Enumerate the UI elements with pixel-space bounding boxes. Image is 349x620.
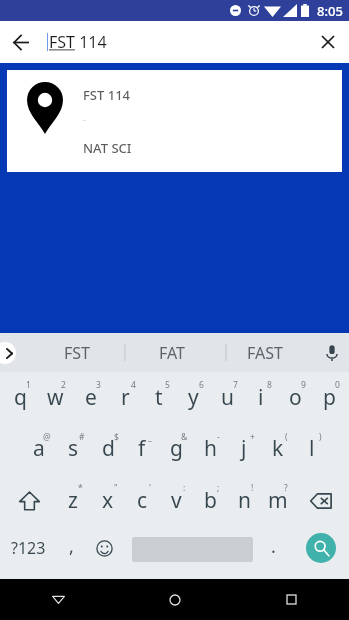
- staticText: a: [33, 434, 45, 463]
- staticText: q: [14, 383, 27, 412]
- staticText: ": [114, 482, 118, 494]
- staticText: #: [79, 431, 85, 443]
- staticText: p: [323, 383, 336, 412]
- staticText: 2: [61, 379, 66, 391]
- staticText: 1: [26, 379, 31, 391]
- staticText: o: [289, 383, 302, 412]
- staticText: w: [47, 383, 64, 412]
- staticText: f: [138, 434, 146, 463]
- staticText: *: [78, 482, 83, 494]
- staticText: -: [217, 431, 220, 443]
- staticText: !: [251, 482, 254, 494]
- staticText: j: [241, 434, 247, 463]
- staticText: 8: [267, 379, 272, 391]
- staticText: y: [188, 383, 199, 412]
- staticText: FST 114: [83, 86, 131, 104]
- button[interactable]: Search: [306, 533, 336, 563]
- staticText: 0: [335, 379, 340, 391]
- button[interactable]: Shift: [3, 475, 55, 527]
- button[interactable]: ?: [261, 475, 295, 527]
- staticText: 8:05: [317, 2, 343, 20]
- button[interactable]: ': [125, 475, 159, 527]
- staticText: ;: [217, 482, 220, 494]
- staticText: r: [121, 383, 130, 412]
- button[interactable]: Back: [0, 579, 117, 620]
- button[interactable]: Voice input: [319, 340, 345, 366]
- staticText: 4: [131, 379, 136, 391]
- button[interactable]: !: [227, 475, 261, 527]
- staticText: 9: [301, 379, 306, 391]
- button[interactable]: Back: [0, 21, 42, 63]
- staticText: 6: [199, 379, 204, 391]
- staticText: ): [319, 431, 322, 443]
- staticText: 3: [96, 379, 101, 391]
- button[interactable]: 8: [244, 372, 278, 424]
- button[interactable]: 9: [278, 372, 312, 424]
- staticText: b: [204, 486, 217, 515]
- staticText: m: [268, 486, 288, 515]
- staticText: -: [83, 113, 86, 125]
- staticText: c: [137, 486, 148, 515]
- button[interactable]: ,: [56, 527, 86, 579]
- button[interactable]: (: [261, 424, 295, 475]
- button[interactable]: 3: [73, 372, 108, 424]
- staticText: ,: [69, 534, 74, 559]
- button[interactable]: FAT: [122, 333, 222, 372]
- staticText: g: [170, 434, 183, 463]
- staticText: d: [102, 434, 115, 463]
- staticText: .: [271, 534, 276, 559]
- button[interactable]: $: [91, 424, 125, 475]
- button[interactable]: .: [258, 527, 288, 579]
- button[interactable]: Home: [117, 579, 233, 620]
- staticText: n: [238, 486, 251, 515]
- button[interactable]: Emoji: [88, 527, 121, 579]
- button[interactable]: 0: [312, 372, 346, 424]
- staticText: FAT: [159, 342, 185, 364]
- button[interactable]: :: [159, 475, 193, 527]
- staticText: $: [114, 431, 119, 443]
- staticText: (: [285, 431, 288, 443]
- button[interactable]: More suggestions: [0, 342, 16, 364]
- staticText: 7: [233, 379, 238, 391]
- button[interactable]: 7: [210, 372, 244, 424]
- staticText: s: [68, 434, 79, 463]
- staticText: h: [204, 434, 217, 463]
- button[interactable]: -: [193, 424, 227, 475]
- staticText: t: [155, 383, 163, 412]
- staticText: ': [149, 482, 151, 494]
- button[interactable]: *: [55, 475, 90, 527]
- staticText: k: [272, 434, 284, 463]
- staticText: e: [85, 383, 97, 412]
- staticText: FAST: [247, 342, 283, 364]
- button[interactable]: Recent apps: [233, 579, 349, 620]
- button[interactable]: 4: [108, 372, 142, 424]
- button[interactable]: ?123: [0, 527, 56, 579]
- button[interactable]: ;: [193, 475, 227, 527]
- button[interactable]: ": [90, 475, 125, 527]
- button[interactable]: 1: [3, 372, 38, 424]
- button[interactable]: +: [227, 424, 261, 475]
- staticText: ?123: [11, 537, 46, 559]
- staticText: _: [148, 431, 152, 443]
- button[interactable]: FAST: [222, 333, 307, 372]
- staticText: +: [250, 431, 255, 443]
- staticText: x: [102, 486, 114, 515]
- button[interactable]: FST 114: [7, 70, 342, 172]
- staticText: 5: [165, 379, 170, 391]
- button[interactable]: &: [159, 424, 193, 475]
- button[interactable]: 6: [176, 372, 210, 424]
- button[interactable]: 5: [142, 372, 176, 424]
- button[interactable]: Backspace: [295, 475, 346, 527]
- staticText: v: [171, 486, 182, 515]
- button[interactable]: @: [21, 424, 56, 475]
- button[interactable]: FST: [26, 333, 128, 372]
- button[interactable]: ): [295, 424, 329, 475]
- staticText: u: [221, 383, 234, 412]
- button[interactable]: Clear search: [307, 21, 349, 63]
- button[interactable]: #: [56, 424, 91, 475]
- staticText: FST: [64, 342, 90, 364]
- staticText: 114: [75, 31, 107, 53]
- button[interactable]: 2: [38, 372, 73, 424]
- button[interactable]: _: [125, 424, 159, 475]
